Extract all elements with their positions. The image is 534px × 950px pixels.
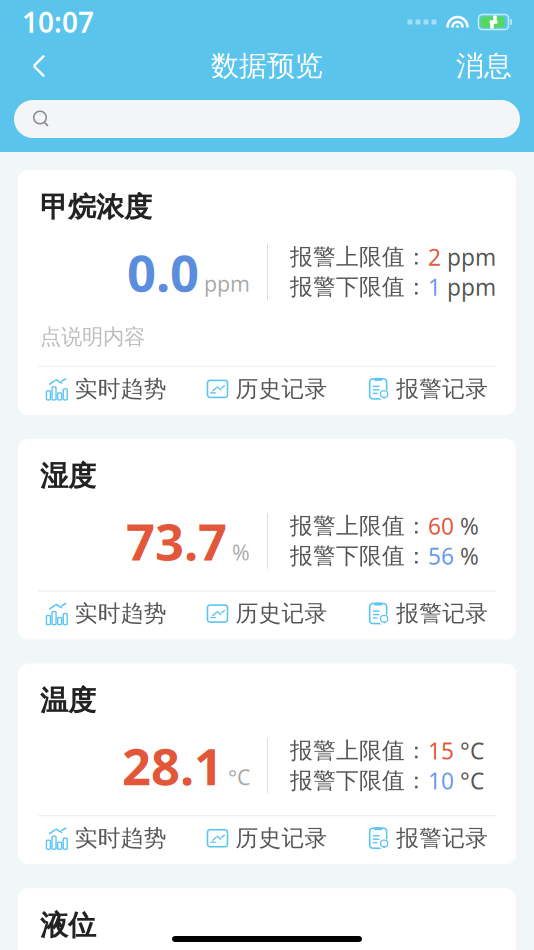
staticText: ppm — [441, 242, 496, 272]
staticText: 60 — [428, 511, 454, 541]
staticText: 73.7 — [126, 507, 227, 575]
staticText: 28.1 — [122, 732, 223, 799]
staticText: 历史记录 — [235, 600, 327, 627]
staticText: 0.0 — [127, 238, 199, 306]
button[interactable]: 实时趋势 — [26, 592, 187, 636]
button[interactable]: 返回 — [16, 44, 62, 88]
button[interactable]: 消息 — [450, 44, 518, 88]
button[interactable]: 报警记录 — [347, 367, 508, 411]
staticText: 报警上限值： — [290, 243, 428, 271]
button[interactable]: 历史记录 — [187, 367, 347, 411]
staticText: °C — [454, 735, 484, 766]
button[interactable]: 实时趋势 — [26, 816, 187, 860]
staticText: 实时趋势 — [75, 375, 167, 403]
staticText: 1 — [428, 272, 441, 302]
staticText: 报警记录 — [396, 375, 488, 403]
staticText: 历史记录 — [235, 375, 327, 403]
staticText: °C — [228, 763, 250, 791]
staticText: 液位 — [40, 908, 96, 943]
staticText: 56 — [428, 541, 454, 571]
staticText: 10:07 — [22, 3, 94, 41]
staticText: 报警下限值： — [290, 767, 428, 794]
button[interactable]: 历史记录 — [187, 816, 347, 860]
staticText: 报警下限值： — [290, 273, 428, 301]
staticText: ppm — [204, 269, 250, 297]
staticText: 湿度 — [40, 459, 96, 493]
staticText: 10 — [428, 765, 454, 796]
staticText: 15 — [428, 735, 454, 766]
staticText: 温度 — [40, 684, 96, 718]
staticText: °C — [454, 765, 484, 796]
button[interactable]: 报警记录 — [347, 816, 508, 860]
staticText: 实时趋势 — [75, 824, 167, 852]
staticText: 实时趋势 — [75, 600, 167, 627]
staticText: 消息 — [456, 49, 512, 83]
button[interactable]: 报警记录 — [347, 592, 508, 636]
staticText: 甲烷浓度 — [40, 190, 152, 224]
staticText: 数据预览 — [211, 49, 323, 83]
staticText: % — [454, 541, 479, 571]
staticText: 报警上限值： — [290, 737, 428, 764]
staticText: 报警记录 — [396, 824, 488, 852]
button[interactable]: 历史记录 — [187, 592, 347, 636]
staticText: 点说明内容 — [40, 324, 145, 350]
staticText: 历史记录 — [235, 824, 327, 852]
staticText: 报警记录 — [396, 600, 488, 627]
staticText: ppm — [441, 272, 496, 302]
staticText: 2 — [428, 242, 441, 272]
staticText: % — [232, 538, 250, 566]
staticText: 报警下限值： — [290, 542, 428, 570]
button[interactable]: 实时趋势 — [26, 367, 187, 411]
staticText: % — [454, 511, 479, 541]
staticText: 报警上限值： — [290, 512, 428, 540]
button[interactable]: 搜索 — [14, 100, 520, 138]
